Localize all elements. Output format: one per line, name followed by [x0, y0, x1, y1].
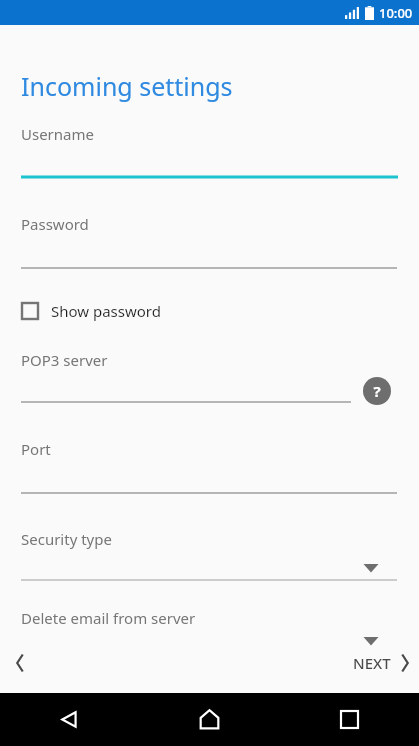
button[interactable]: Back: [0, 693, 139, 746]
staticText: NEXT: [353, 653, 391, 673]
button[interactable]: NEXT: [353, 643, 415, 683]
staticText: Delete email from server: [21, 608, 196, 628]
staticText: 10:00: [379, 4, 413, 22]
staticText: Incoming settings: [21, 69, 233, 103]
button[interactable]: [21, 465, 397, 495]
button[interactable]: Home: [139, 693, 279, 746]
staticText: Show password: [51, 301, 161, 321]
button[interactable]: [21, 630, 397, 656]
staticText: Security type: [21, 529, 112, 549]
staticText: ?: [373, 381, 381, 401]
staticText: Username: [21, 124, 94, 144]
staticText: POP3 server: [21, 350, 108, 370]
button[interactable]: Help: [363, 377, 391, 405]
button[interactable]: Show password: [21, 296, 161, 326]
button[interactable]: [21, 150, 398, 180]
button[interactable]: Previous: [2, 645, 38, 681]
button[interactable]: Recent apps: [279, 693, 419, 746]
button[interactable]: [21, 376, 351, 404]
staticText: Port: [21, 439, 51, 459]
button[interactable]: [21, 550, 397, 582]
button[interactable]: [21, 240, 397, 270]
staticText: Password: [21, 214, 89, 234]
